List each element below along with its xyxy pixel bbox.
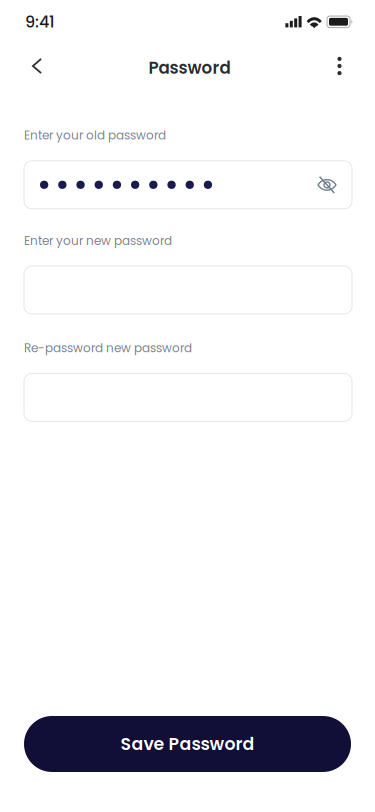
button[interactable] xyxy=(24,266,352,314)
staticText: Password xyxy=(148,56,230,80)
staticText: Enter your old password xyxy=(24,127,166,144)
staticText: Re-password new password xyxy=(24,340,192,356)
staticText: Save Password xyxy=(120,732,254,756)
button[interactable] xyxy=(24,373,352,421)
button[interactable]: Back xyxy=(21,44,53,88)
button[interactable]: Save Password xyxy=(24,716,351,772)
button[interactable] xyxy=(24,161,352,209)
staticText: 9:41 xyxy=(25,11,55,33)
button[interactable]: More options xyxy=(323,44,356,88)
staticText: Enter your new password xyxy=(24,232,172,249)
